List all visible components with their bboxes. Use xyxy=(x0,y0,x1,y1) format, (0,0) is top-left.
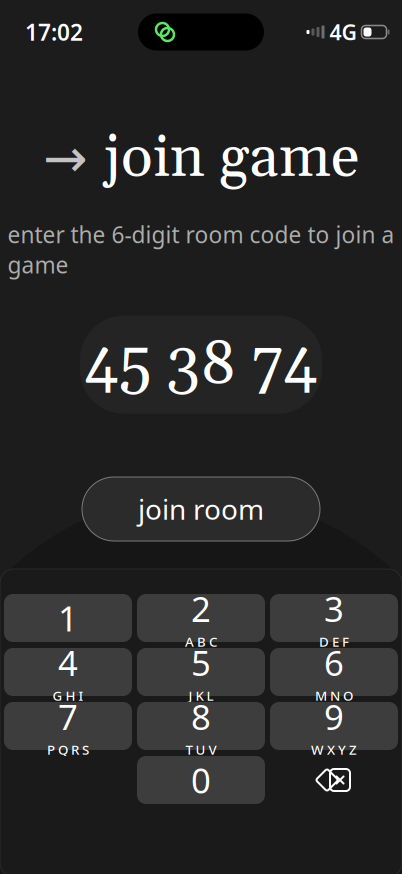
button[interactable]: 2 xyxy=(137,594,265,642)
staticText: W X Y Z xyxy=(311,741,357,758)
staticText: → xyxy=(43,128,88,188)
staticText: 2 xyxy=(191,586,211,632)
staticText: 9 xyxy=(324,694,344,740)
staticText: 6 xyxy=(324,640,344,686)
staticText: join game xyxy=(104,121,359,195)
staticText: 5 xyxy=(191,640,211,686)
staticText: A B C xyxy=(185,633,217,650)
staticText: 1 xyxy=(58,595,78,641)
button[interactable]: 5 xyxy=(137,648,265,696)
staticText: 3 xyxy=(324,586,344,632)
staticText: 45 38 74 xyxy=(84,326,318,404)
staticText: T U V xyxy=(185,741,216,758)
staticText: enter the 6-digit room code to join a ga… xyxy=(7,219,394,280)
button[interactable]: 0 xyxy=(137,756,265,804)
staticText: P Q R S xyxy=(47,741,89,758)
button[interactable]: 45 38 74 xyxy=(80,316,322,414)
button[interactable]: 3 xyxy=(270,594,398,642)
staticText: 4G xyxy=(329,18,356,46)
button[interactable]: Delete xyxy=(270,756,398,804)
button[interactable]: join room xyxy=(82,477,320,541)
button[interactable]: 8 xyxy=(137,702,265,750)
button[interactable]: 9 xyxy=(270,702,398,750)
staticText: 17:02 xyxy=(25,17,83,47)
staticText: 4 xyxy=(58,640,78,686)
button[interactable]: 1 xyxy=(4,594,132,642)
staticText: J K L xyxy=(188,687,213,704)
button[interactable]: 4 xyxy=(4,648,132,696)
staticText: 0 xyxy=(191,757,211,803)
staticText: 7 xyxy=(58,694,78,740)
button[interactable]: 7 xyxy=(4,702,132,750)
button[interactable]: 6 xyxy=(270,648,398,696)
staticText: G H I xyxy=(52,687,83,704)
staticText: M N O xyxy=(315,687,353,704)
staticText: 8 xyxy=(191,694,211,740)
staticText: D E F xyxy=(319,633,349,650)
staticText: join room xyxy=(138,490,264,528)
